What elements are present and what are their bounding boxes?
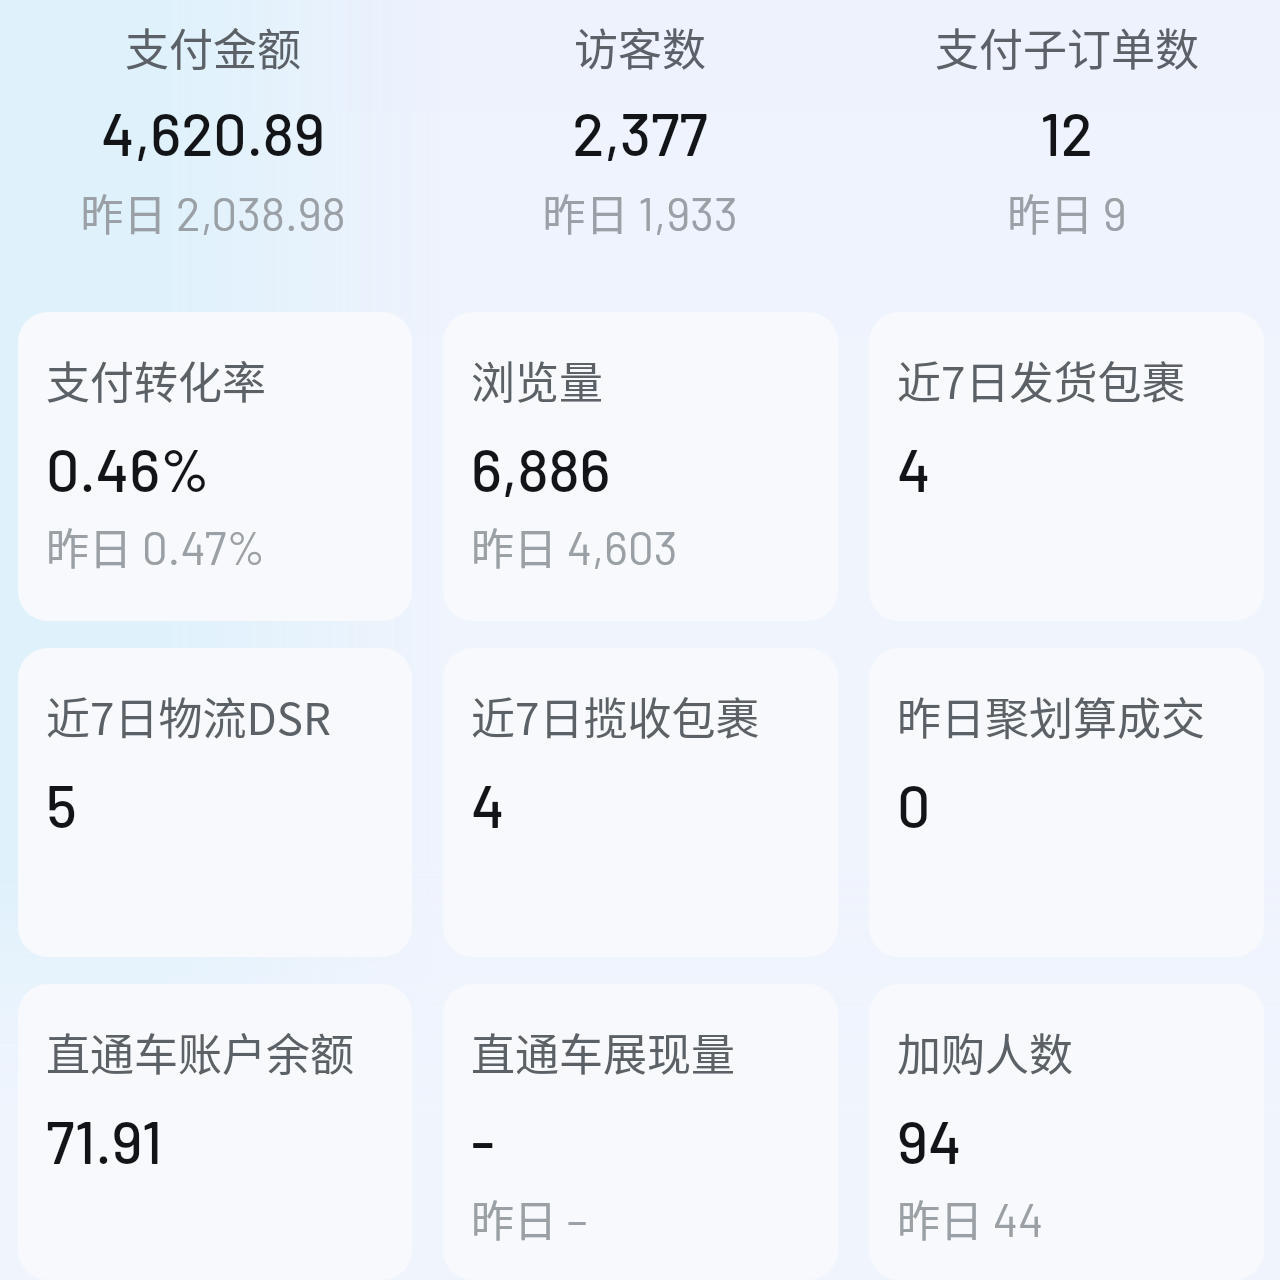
button[interactable]: 支付转化率 bbox=[18, 312, 412, 621]
staticText: 94 bbox=[897, 1105, 962, 1176]
button[interactable]: 近7日物流DSR bbox=[18, 648, 412, 957]
button[interactable]: 近7日发货包裹 bbox=[869, 312, 1264, 621]
staticText: 0 bbox=[897, 769, 931, 840]
button[interactable]: 浏览量 bbox=[443, 312, 838, 621]
staticText: 直通车展现量 bbox=[471, 1020, 735, 1084]
staticText: 支付金额 bbox=[125, 15, 301, 79]
staticText: 5 bbox=[46, 769, 77, 840]
staticText: - bbox=[471, 1105, 495, 1176]
staticText: 昨日 – bbox=[471, 1187, 588, 1249]
staticText: 昨日 2,038.98 bbox=[80, 181, 346, 243]
staticText: 0.46% bbox=[46, 433, 210, 504]
button[interactable]: 访客数 bbox=[426, 15, 853, 243]
staticText: 近7日发货包裹 bbox=[897, 348, 1186, 412]
staticText: 2,377 bbox=[572, 97, 708, 168]
staticText: 直通车账户余额 bbox=[46, 1020, 354, 1084]
staticText: 近7日物流DSR bbox=[46, 684, 331, 748]
staticText: 昨日 1,933 bbox=[542, 181, 738, 243]
button[interactable]: 直通车展现量 bbox=[443, 984, 838, 1280]
button[interactable]: 直通车账户余额 bbox=[18, 984, 412, 1280]
staticText: 访客数 bbox=[574, 15, 706, 79]
staticText: 昨日 4,603 bbox=[471, 515, 678, 577]
staticText: 4,620.89 bbox=[101, 97, 325, 168]
staticText: 71.91 bbox=[46, 1105, 163, 1176]
staticText: 昨日 0.47% bbox=[46, 515, 266, 577]
staticText: 近7日揽收包裹 bbox=[471, 684, 760, 748]
button[interactable]: 昨日聚划算成交 bbox=[869, 648, 1264, 957]
staticText: 浏览量 bbox=[471, 348, 603, 412]
staticText: 6,886 bbox=[471, 433, 611, 504]
staticText: 加购人数 bbox=[897, 1020, 1073, 1084]
staticText: 12 bbox=[1040, 97, 1093, 168]
staticText: 支付转化率 bbox=[46, 348, 266, 412]
staticText: 支付子订单数 bbox=[935, 15, 1199, 79]
button[interactable]: 加购人数 bbox=[869, 984, 1264, 1280]
staticText: 4 bbox=[471, 769, 505, 840]
staticText: 昨日聚划算成交 bbox=[897, 684, 1205, 748]
staticText: 昨日 44 bbox=[897, 1187, 1044, 1249]
button[interactable]: 支付金额 bbox=[0, 15, 426, 243]
button[interactable]: 支付子订单数 bbox=[853, 15, 1280, 243]
button[interactable]: 近7日揽收包裹 bbox=[443, 648, 838, 957]
staticText: 昨日 9 bbox=[1007, 181, 1127, 243]
staticText: 4 bbox=[897, 433, 931, 504]
